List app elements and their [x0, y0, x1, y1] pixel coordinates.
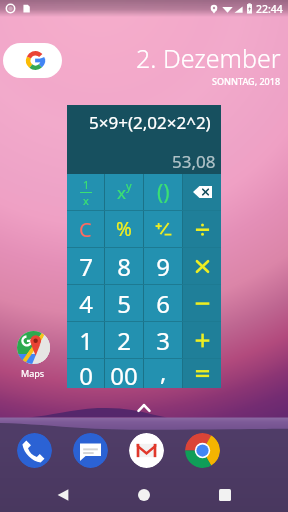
other: Divide	[195, 222, 210, 237]
staticText: Maps	[21, 367, 45, 379]
button[interactable]: Open app drawer	[134, 398, 154, 418]
staticText: 3	[156, 324, 170, 357]
other: Backspace	[193, 186, 212, 198]
button[interactable]: 1	[67, 322, 104, 358]
button[interactable]: 3	[144, 322, 182, 358]
other: Equals	[195, 366, 210, 381]
button[interactable]: ,	[144, 359, 182, 388]
button[interactable]: Home	[130, 481, 158, 509]
button[interactable]: Gmail	[129, 433, 164, 468]
staticText: 5×9+(2,02×2^2)	[89, 111, 211, 134]
button[interactable]: Minus	[183, 285, 221, 321]
button[interactable]: 2	[105, 322, 143, 358]
button[interactable]: Back	[49, 481, 77, 509]
other: Plus minus	[155, 221, 172, 238]
button[interactable]: Messages	[73, 433, 108, 468]
staticText: 0	[79, 359, 93, 388]
staticText: SONNTAG, 2018	[212, 75, 281, 87]
other: Minus	[195, 296, 210, 311]
button[interactable]: %	[105, 211, 143, 247]
staticText: y	[126, 178, 132, 193]
staticText: x	[117, 181, 126, 204]
staticText: 1	[79, 324, 93, 357]
staticText: 6	[156, 287, 170, 320]
button[interactable]: 4	[67, 285, 104, 321]
button[interactable]: Divide	[183, 211, 221, 247]
button[interactable]: 6	[144, 285, 182, 321]
button[interactable]: Chrome	[185, 433, 220, 468]
staticText: 2	[117, 324, 131, 357]
button[interactable]: 7	[67, 248, 104, 284]
button[interactable]: x	[105, 174, 143, 210]
button[interactable]: Multiply	[183, 248, 221, 284]
button[interactable]: Backspace	[183, 174, 221, 210]
staticText: 4	[79, 287, 93, 320]
button[interactable]: 9	[144, 248, 182, 284]
button[interactable]: 1	[67, 174, 104, 210]
staticText: x	[83, 193, 89, 208]
other: Multiply	[195, 259, 210, 274]
staticText: 1	[83, 177, 90, 192]
button[interactable]: 0	[67, 359, 104, 388]
button[interactable]: ()	[144, 174, 182, 210]
button[interactable]: Recent apps	[211, 481, 239, 509]
button[interactable]: C	[67, 211, 104, 247]
button[interactable]: Plus	[183, 322, 221, 358]
button[interactable]: 00	[105, 359, 143, 388]
staticText: 7	[79, 250, 93, 283]
staticText: 5	[117, 287, 131, 320]
staticText: 2. Dezember	[136, 41, 281, 75]
staticText: C	[79, 216, 92, 243]
staticText: ()	[157, 178, 170, 207]
other: Plus	[195, 333, 210, 348]
staticText: 00	[110, 359, 138, 388]
button[interactable]: Maps	[11, 331, 55, 379]
button[interactable]: 5	[105, 285, 143, 321]
staticText: 8	[117, 250, 131, 283]
staticText: 22:44	[256, 2, 283, 16]
button[interactable]: Plus minus	[144, 211, 182, 247]
staticText: 53,08	[172, 150, 216, 173]
staticText: 9	[156, 250, 170, 283]
button[interactable]: Phone	[17, 433, 52, 468]
button[interactable]: 8	[105, 248, 143, 284]
staticText: ,	[160, 355, 167, 384]
button[interactable]: Google search	[3, 43, 62, 78]
staticText: %	[116, 216, 132, 242]
button[interactable]: Equals	[183, 359, 221, 388]
